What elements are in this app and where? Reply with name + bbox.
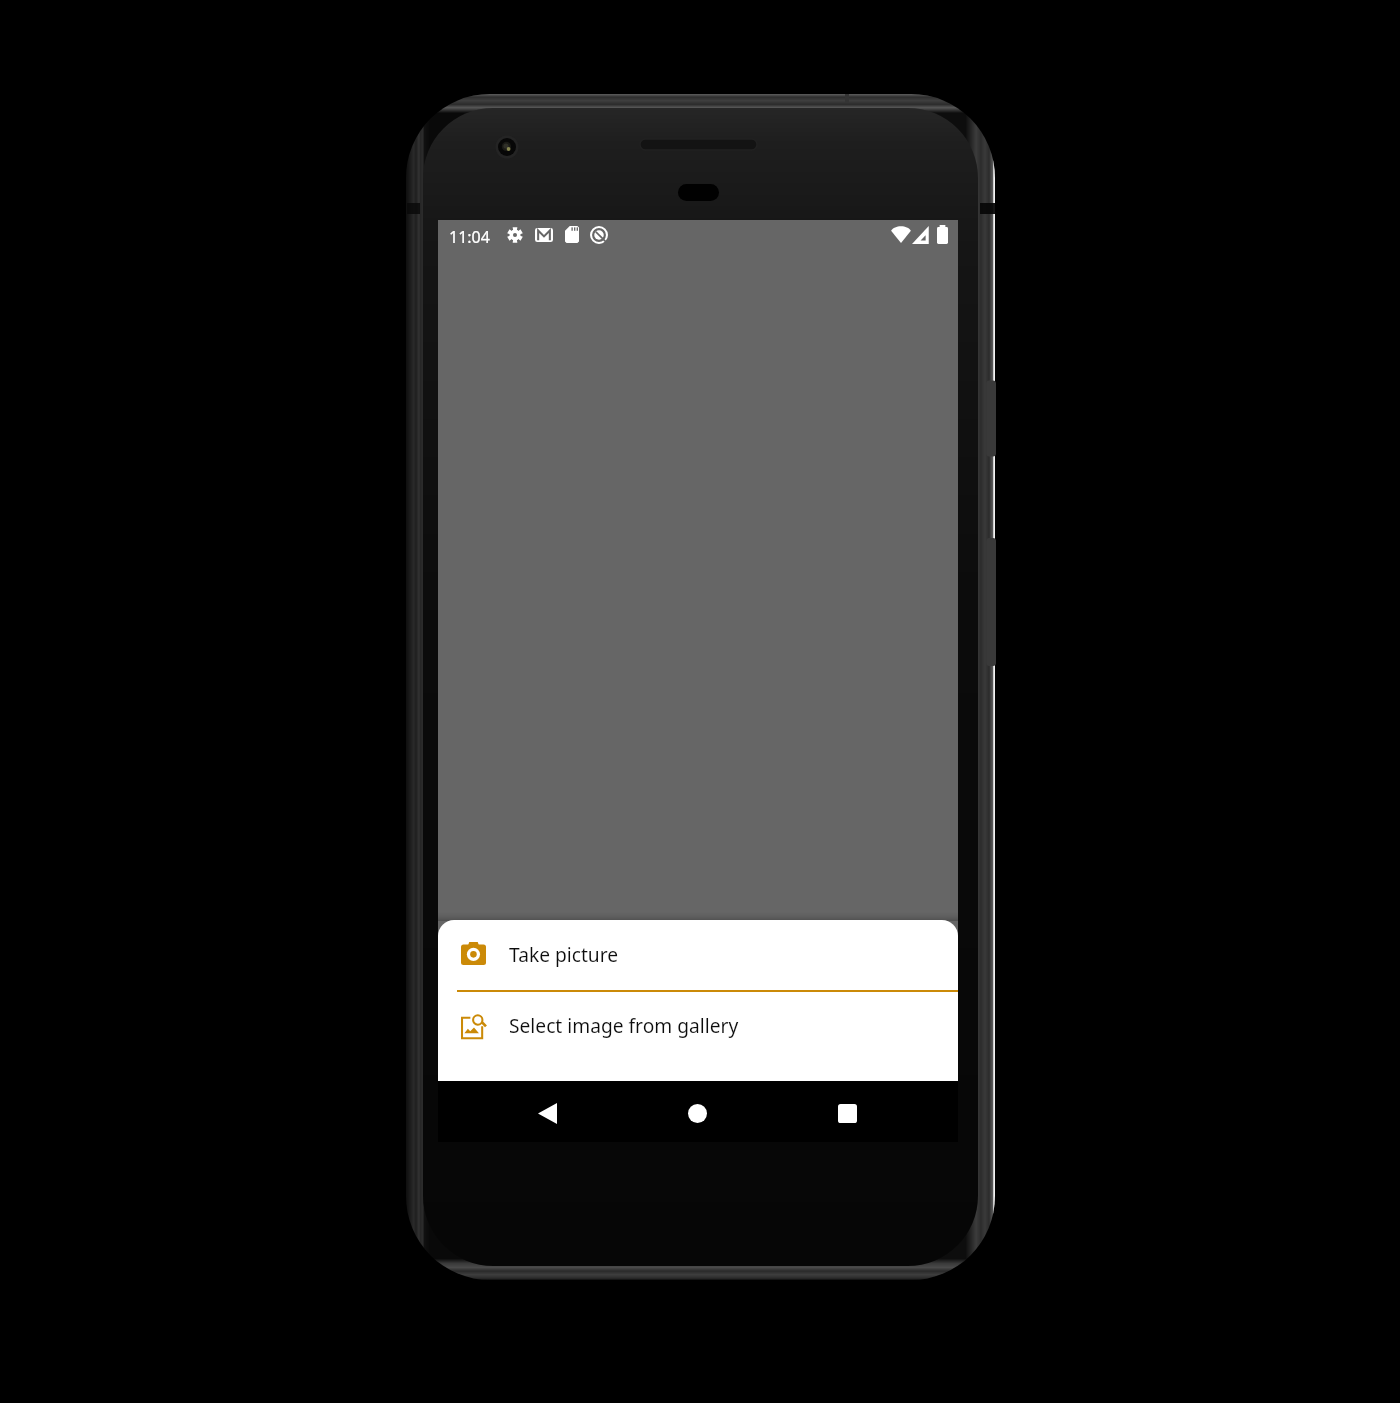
button[interactable]: Home: [668, 1084, 726, 1142]
button[interactable]: Back: [518, 1084, 576, 1142]
staticText: Take picture: [509, 941, 619, 967]
staticText: Select image from gallery: [509, 1012, 739, 1038]
button[interactable]: Select image from gallery: [438, 992, 958, 1081]
staticText: 11:04: [449, 226, 490, 248]
button[interactable]: Take picture: [438, 920, 958, 990]
button[interactable]: Recent apps: [818, 1084, 876, 1142]
